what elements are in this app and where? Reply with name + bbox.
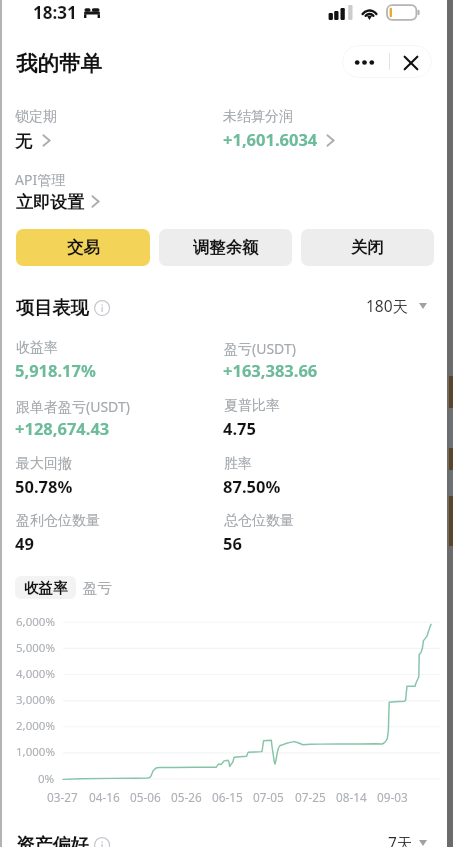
staticText: +128,674.43 <box>15 417 110 439</box>
button[interactable]: 盈亏 <box>82 576 113 599</box>
staticText: 盈利仓位数量 <box>16 512 100 530</box>
button[interactable]: 交易 <box>16 229 150 266</box>
staticText: 2,000% <box>16 718 55 734</box>
button[interactable]: 关闭 <box>301 229 434 266</box>
button[interactable]: More options <box>342 45 389 78</box>
staticText: 我的带单 <box>16 50 102 77</box>
staticText: 3,000% <box>16 692 55 708</box>
button[interactable]: 收益率 <box>15 576 76 599</box>
staticText: 09-03 <box>377 789 408 805</box>
staticText: 胜率 <box>224 455 252 473</box>
staticText: 4,000% <box>16 666 55 682</box>
staticText: 无 <box>15 131 32 152</box>
staticText: 07-05 <box>253 789 284 805</box>
staticText: 03-27 <box>47 789 78 805</box>
staticText: +163,383.66 <box>223 359 318 381</box>
staticText: 180天 <box>366 295 409 316</box>
staticText: 05-06 <box>130 789 161 805</box>
staticText: 立即设置 <box>16 192 84 213</box>
staticText: 4.75 <box>223 417 256 439</box>
staticText: 5,918.17% <box>15 359 96 381</box>
staticText: 未结算分润 <box>223 108 293 126</box>
staticText: 盈亏(USDT) <box>224 339 296 358</box>
staticText: 1,000% <box>16 744 55 760</box>
staticText: 资产偏好 <box>16 833 89 847</box>
staticText: 04-16 <box>89 789 120 805</box>
staticText: 跟单者盈亏(USDT) <box>16 397 130 416</box>
staticText: 49 <box>15 532 34 554</box>
staticText: 总仓位数量 <box>224 512 294 530</box>
staticText: 50.78% <box>15 475 73 497</box>
button[interactable]: 调整余额 <box>159 229 292 266</box>
staticText: +1,601.6034 <box>223 128 318 150</box>
staticText: 0% <box>38 771 55 787</box>
staticText: 锁定期 <box>15 108 57 126</box>
staticText: 调整余额 <box>193 237 259 258</box>
staticText: 06-15 <box>212 789 243 805</box>
staticText: 18:31 <box>33 1 77 24</box>
staticText: 07-25 <box>295 789 326 805</box>
staticText: 交易 <box>67 237 100 258</box>
staticText: 收益率 <box>24 579 68 597</box>
staticText: 盈亏 <box>83 579 112 597</box>
staticText: 08-14 <box>336 789 367 805</box>
staticText: 7天 <box>388 832 413 847</box>
staticText: 最大回撤 <box>16 455 72 473</box>
staticText: 56 <box>223 532 242 554</box>
staticText: API管理 <box>15 170 66 189</box>
staticText: 5,000% <box>16 640 55 656</box>
button[interactable]: Close <box>390 45 432 78</box>
staticText: 6,000% <box>16 614 55 630</box>
staticText: 05-26 <box>171 789 202 805</box>
staticText: 夏普比率 <box>224 397 280 415</box>
staticText: 关闭 <box>351 237 384 258</box>
staticText: 87.50% <box>223 475 281 497</box>
staticText: 收益率 <box>16 339 58 357</box>
staticText: 项目表现 <box>16 296 89 319</box>
